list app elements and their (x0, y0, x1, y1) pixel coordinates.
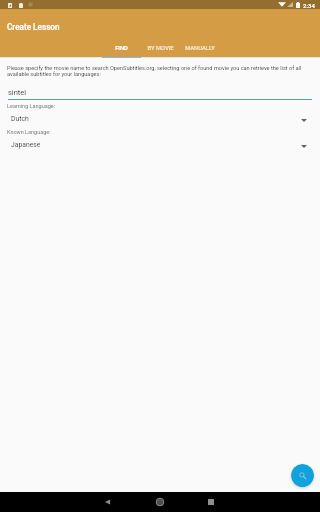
staticText: Dutch (11, 115, 29, 123)
button[interactable]: Search (291, 464, 314, 487)
staticText: Create Lesson (7, 22, 60, 32)
button[interactable]: Dutch (0, 112, 320, 128)
staticText: Learning Language: (7, 103, 56, 109)
staticText: sintel (8, 88, 27, 97)
button[interactable]: Recent apps (199, 492, 223, 512)
staticText: MANUALLY (185, 45, 215, 52)
staticText: 2:34 (303, 2, 315, 9)
staticText: Japanese (11, 141, 41, 149)
button[interactable]: BY MOVIE (141, 37, 180, 57)
staticText: BY MOVIE (147, 45, 174, 52)
button[interactable]: MANUALLY (180, 37, 219, 57)
button[interactable]: Japanese (0, 138, 320, 154)
staticText: FIND (115, 45, 128, 52)
staticText: Known Language: (7, 129, 51, 135)
button[interactable]: sintel (8, 85, 312, 100)
button[interactable]: FIND (102, 37, 141, 57)
staticText: Please specify the movie name to search … (7, 65, 308, 77)
button[interactable]: Home (148, 492, 172, 512)
button[interactable]: Back (96, 492, 120, 512)
